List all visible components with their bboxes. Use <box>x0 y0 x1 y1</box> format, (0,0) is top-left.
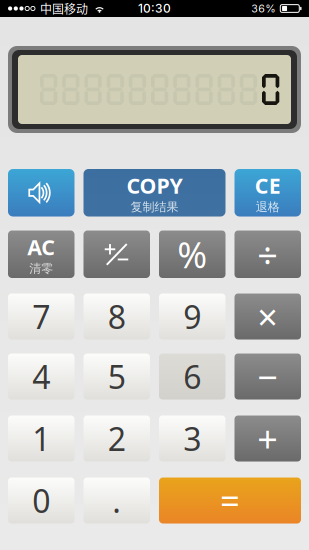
button[interactable]: − <box>234 353 301 399</box>
button[interactable]: = <box>159 477 301 523</box>
staticText: 5 <box>108 355 126 398</box>
staticText: 6 <box>183 355 201 398</box>
button[interactable]: COPY <box>83 169 225 216</box>
button[interactable]: 6 <box>159 353 225 399</box>
button[interactable]: 1 <box>8 415 74 461</box>
staticText: 1 <box>32 417 50 460</box>
button[interactable]: 2 <box>83 415 150 461</box>
staticText: . <box>112 479 121 522</box>
staticText: = <box>220 477 240 523</box>
button[interactable]: CE <box>234 169 301 216</box>
staticText: 0 <box>32 479 50 522</box>
staticText: 中国移动 <box>40 0 88 17</box>
staticText: + <box>257 415 278 462</box>
button[interactable]: Plus minus <box>83 230 150 278</box>
button[interactable]: ÷ <box>234 230 301 278</box>
staticText: × <box>257 293 278 340</box>
staticText: AC <box>27 233 55 261</box>
button[interactable]: 4 <box>8 353 74 399</box>
button[interactable]: + <box>234 415 301 461</box>
staticText: 10:30 <box>138 1 171 16</box>
button[interactable]: % <box>159 230 225 278</box>
button[interactable]: × <box>234 293 301 339</box>
staticText: 清零 <box>29 261 53 276</box>
button[interactable]: 3 <box>159 415 225 461</box>
staticText: CE <box>255 171 281 199</box>
button[interactable]: AC <box>8 230 74 278</box>
staticText: 退格 <box>256 199 280 214</box>
button[interactable]: Speak result <box>8 169 74 216</box>
staticText: ÷ <box>257 230 278 278</box>
button[interactable]: 5 <box>83 353 150 399</box>
staticText: 4 <box>32 355 50 398</box>
staticText: COPY <box>126 171 182 199</box>
staticText: 36% <box>251 2 275 15</box>
staticText: 9 <box>183 295 201 338</box>
staticText: 3 <box>183 417 201 460</box>
button[interactable]: 9 <box>159 293 225 339</box>
staticText: 8 <box>108 295 126 338</box>
staticText: 复制结果 <box>130 199 178 214</box>
button[interactable]: 7 <box>8 293 74 339</box>
staticText: 7 <box>32 295 50 338</box>
button[interactable]: 0 <box>8 477 74 523</box>
button[interactable]: . <box>83 477 150 523</box>
button[interactable]: 8 <box>83 293 150 339</box>
staticText: % <box>177 230 207 278</box>
staticText: − <box>257 353 278 400</box>
staticText: 2 <box>108 417 126 460</box>
